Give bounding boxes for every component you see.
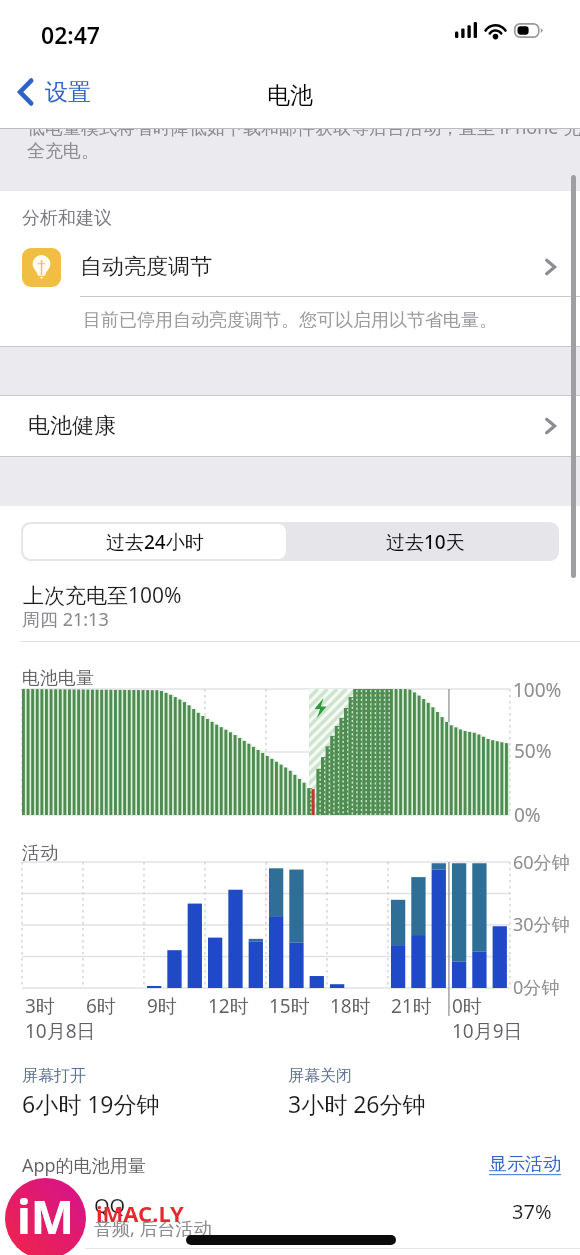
- staticText: 活动: [22, 842, 58, 865]
- button[interactable]: 自动亮度调节: [0, 239, 580, 295]
- staticText: 低电量模式将省时降低如下载和邮件获取等后台活动，直至 iPhone 充: [27, 129, 580, 140]
- staticText: App的电池用量: [22, 1153, 146, 1178]
- staticText: 12时: [208, 993, 249, 1019]
- staticText: 显示活动: [489, 1153, 561, 1176]
- button[interactable]: 过去10天: [294, 522, 557, 561]
- staticText: 30分钟: [513, 912, 570, 937]
- staticText: 6小时 19分钟: [22, 1088, 160, 1119]
- staticText: 音频, 后台活动: [94, 1216, 212, 1241]
- staticText: 9时: [147, 993, 177, 1019]
- staticText: 目前已停用自动亮度调节。您可以启用以节省电量。: [83, 309, 497, 332]
- staticText: 0%: [514, 802, 541, 828]
- staticText: 屏幕关闭: [288, 1066, 352, 1086]
- staticText: 50%: [514, 738, 552, 764]
- staticText: 电池电量: [22, 667, 94, 690]
- staticText: 电池: [267, 81, 313, 110]
- staticText: QQ: [94, 1192, 126, 1219]
- staticText: 0时: [452, 993, 482, 1019]
- staticText: 10月9日: [452, 1018, 523, 1044]
- button[interactable]: 显示活动: [489, 1153, 561, 1176]
- staticText: 6时: [86, 993, 116, 1019]
- staticText: 3时: [25, 993, 55, 1019]
- staticText: 0分钟: [513, 975, 560, 1000]
- staticText: iMAC.LY: [96, 1198, 184, 1228]
- staticText: iM: [17, 1185, 75, 1248]
- button[interactable]: 设置: [12, 70, 100, 114]
- staticText: 上次充电至100%: [23, 581, 182, 610]
- staticText: 02:47: [41, 19, 100, 50]
- staticText: 15时: [269, 993, 310, 1019]
- staticText: 自动亮度调节: [80, 253, 212, 281]
- staticText: 37%: [512, 1198, 552, 1225]
- staticText: 全充电。: [27, 140, 99, 163]
- button[interactable]: 过去24小时: [23, 524, 286, 559]
- staticText: 21时: [391, 993, 432, 1019]
- staticText: 设置: [45, 78, 91, 107]
- staticText: 3小时 26分钟: [288, 1088, 426, 1119]
- staticText: 过去24小时: [106, 529, 204, 555]
- staticText: 电池健康: [28, 412, 116, 440]
- staticText: 100%: [513, 677, 562, 703]
- staticText: 周四 21:13: [22, 607, 109, 632]
- staticText: 18时: [330, 993, 371, 1019]
- staticText: 分析和建议: [22, 207, 112, 230]
- staticText: 60分钟: [513, 850, 570, 875]
- staticText: 屏幕打开: [22, 1066, 86, 1086]
- staticText: 10月8日: [25, 1018, 96, 1044]
- button[interactable]: 电池健康: [0, 396, 580, 456]
- staticText: 过去10天: [386, 529, 465, 555]
